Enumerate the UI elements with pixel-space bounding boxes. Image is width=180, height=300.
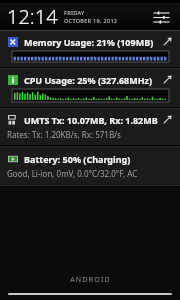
button[interactable]: Battery: 50% (Charging) bbox=[0, 147, 180, 185]
staticText: OCTOBER 19, 2012 bbox=[64, 17, 118, 24]
button[interactable]: UMTS Tx: 10.07MB, Rx: 1.82MB bbox=[0, 109, 180, 145]
button[interactable]: Close notification shade bbox=[8, 293, 172, 295]
button[interactable]: Expand bbox=[161, 73, 174, 86]
staticText: FRIDAY bbox=[64, 9, 85, 16]
staticText: Memory Usage: 21% (109MB) bbox=[24, 36, 154, 48]
staticText: ANDROID bbox=[70, 275, 111, 285]
staticText: CPU Usage: 25% (327.68MHz) bbox=[24, 74, 153, 86]
button[interactable]: CPU Usage: 25% (327.68MHz) bbox=[0, 69, 180, 107]
staticText: 12:14 bbox=[7, 3, 58, 30]
staticText: Battery: 50% (Charging) bbox=[24, 153, 131, 165]
staticText: Good, Li-ion, 0mV, 0.0°C/32.0°F, AC bbox=[7, 168, 138, 179]
button[interactable]: Memory Usage: 21% (109MB) bbox=[0, 31, 180, 67]
button[interactable]: Expand bbox=[161, 113, 174, 126]
staticText: Rates: Tx: 1.20KB/s, Rx: 571B/s bbox=[7, 129, 121, 140]
button[interactable]: Quick settings bbox=[150, 6, 172, 28]
button[interactable]: Expand bbox=[161, 35, 174, 48]
staticText: UMTS Tx: 10.07MB, Rx: 1.82MB bbox=[24, 114, 158, 126]
